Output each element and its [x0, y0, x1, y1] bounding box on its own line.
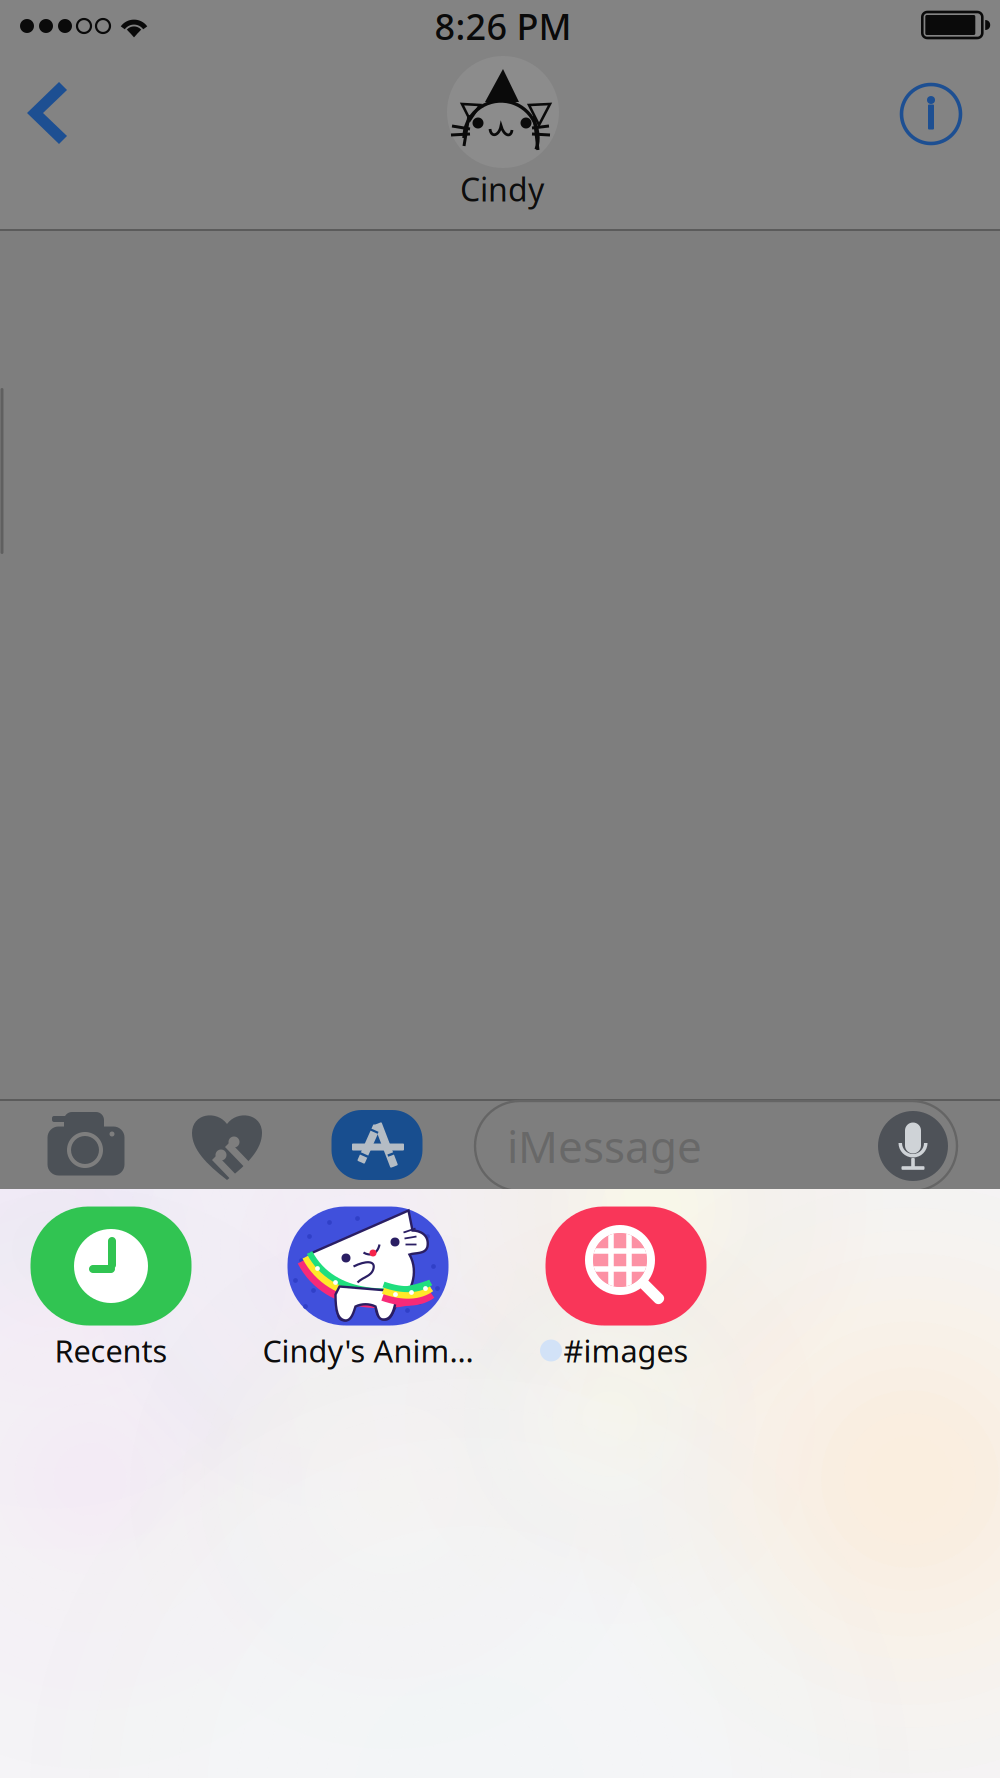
staticText: iMessage	[507, 1117, 702, 1175]
button[interactable]: Back	[0, 57, 95, 169]
staticText: Recents	[54, 1330, 167, 1371]
button[interactable]: Details	[885, 58, 977, 170]
staticText: Cindy	[460, 168, 544, 210]
button[interactable]: Cindy's Anim...	[239, 1198, 496, 1378]
button[interactable]: Camera	[26, 1101, 146, 1189]
staticText: Cindy's Anim...	[262, 1330, 473, 1371]
staticText: 8:26 PM	[434, 2, 571, 50]
button[interactable]: iMessage	[475, 1101, 957, 1191]
button[interactable]: #images	[497, 1198, 754, 1378]
button[interactable]: Digital Touch	[172, 1101, 282, 1189]
staticText: #images	[563, 1330, 688, 1371]
button[interactable]: Recents	[0, 1198, 239, 1378]
button[interactable]: iMessage Apps	[322, 1101, 432, 1189]
